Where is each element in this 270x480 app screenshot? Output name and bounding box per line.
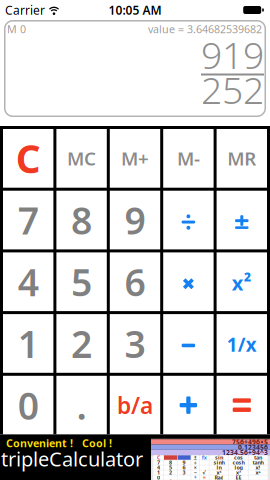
staticText: EE — [235, 474, 241, 480]
staticText: 5 — [71, 257, 92, 307]
button[interactable]: M- — [163, 129, 214, 188]
button[interactable] — [163, 191, 214, 249]
button[interactable]: . — [56, 376, 107, 434]
staticText: sinh — [213, 459, 224, 466]
button[interactable]: 9 — [110, 191, 160, 249]
staticText: tripleCalculator — [1, 445, 143, 472]
staticText: Rad — [214, 474, 223, 480]
button[interactable] — [163, 376, 214, 434]
staticText: tan — [254, 454, 262, 461]
staticText: 2 — [71, 319, 92, 368]
staticText: × — [194, 464, 197, 471]
staticText: b/a — [117, 390, 153, 420]
staticText: = — [203, 474, 206, 480]
staticText: − — [194, 469, 197, 476]
staticText: 1 — [157, 469, 160, 476]
staticText: 9 — [124, 195, 145, 245]
button[interactable]: 0 — [3, 376, 53, 434]
staticText: 1/x — [227, 332, 257, 357]
staticText: 9 — [183, 459, 186, 466]
staticText: x³ — [236, 469, 241, 476]
button[interactable]: M+ — [110, 129, 160, 188]
button[interactable]: 4 — [3, 252, 53, 311]
staticText: fx — [202, 454, 207, 461]
staticText: ± — [194, 454, 197, 461]
staticText: . — [170, 474, 171, 480]
button[interactable]: MC — [56, 129, 107, 188]
staticText: 7 — [18, 195, 39, 245]
staticText: 10:05 AM — [108, 2, 161, 18]
button[interactable]: 8 — [56, 191, 107, 249]
staticText: 5 — [169, 464, 172, 471]
staticText: x² — [216, 469, 221, 476]
button[interactable] — [217, 376, 267, 434]
button[interactable]: x² — [217, 252, 267, 311]
staticText: 8 — [71, 195, 92, 245]
staticText: x² — [232, 269, 252, 296]
staticText: 919 — [201, 30, 264, 79]
staticText: M+ — [121, 146, 149, 171]
button[interactable]: 5 — [56, 252, 107, 311]
staticText: value = 3.64682539682 — [148, 22, 262, 36]
staticText: MC — [67, 146, 96, 171]
staticText: C — [16, 133, 41, 184]
staticText: C — [157, 454, 160, 461]
staticText: 0 — [18, 380, 39, 430]
staticText: 7 — [157, 459, 160, 466]
staticText: 3 — [124, 319, 145, 368]
staticText: M 0 — [7, 22, 26, 36]
staticText: 252 — [201, 65, 264, 114]
staticText: sin — [215, 454, 223, 461]
button[interactable]: 2 — [56, 314, 107, 373]
staticText: ÷ — [194, 459, 197, 466]
staticText: 4 — [157, 464, 160, 471]
button[interactable]: 7 — [3, 191, 53, 249]
staticText: √ — [202, 469, 206, 476]
staticText: 6 — [183, 464, 186, 471]
staticText: ln — [216, 464, 221, 471]
button[interactable]: 1 — [3, 314, 53, 373]
staticText: cosh — [232, 459, 244, 466]
button[interactable]: 1/x — [217, 314, 267, 373]
button[interactable]: 6 — [110, 252, 160, 311]
staticText: 6 — [124, 257, 145, 307]
staticText: 1234.56+94^3 — [222, 448, 268, 457]
staticText: MR — [227, 146, 256, 171]
button[interactable]: 3 — [110, 314, 160, 373]
staticText: log — [234, 464, 242, 471]
staticText: tanh — [253, 459, 264, 466]
staticText: 1 — [18, 319, 39, 368]
staticText: x! — [256, 464, 261, 471]
staticText: 0.123456 — [238, 443, 268, 452]
staticText: M- — [177, 146, 200, 171]
staticText: 2 — [169, 469, 172, 476]
staticText: 756+496×5 — [232, 437, 268, 446]
button[interactable] — [163, 252, 214, 311]
button[interactable]: Convenient ! Cool ! — [0, 434, 270, 480]
staticText: Convenient ! Cool ! — [6, 436, 112, 450]
button[interactable]: C — [3, 129, 53, 188]
staticText: Carrier — [5, 2, 45, 18]
staticText: 0 — [157, 474, 160, 480]
staticText: 4 — [18, 257, 39, 307]
staticText: xª — [256, 469, 261, 476]
staticText: + — [194, 474, 197, 480]
button[interactable] — [217, 191, 267, 249]
button[interactable] — [163, 314, 214, 373]
button[interactable]: b/a — [110, 376, 160, 434]
staticText: 3 — [183, 469, 186, 476]
staticText: . — [77, 380, 87, 430]
staticText: 8 — [169, 459, 172, 466]
button[interactable]: MR — [217, 129, 267, 188]
staticText: cos — [234, 454, 243, 461]
